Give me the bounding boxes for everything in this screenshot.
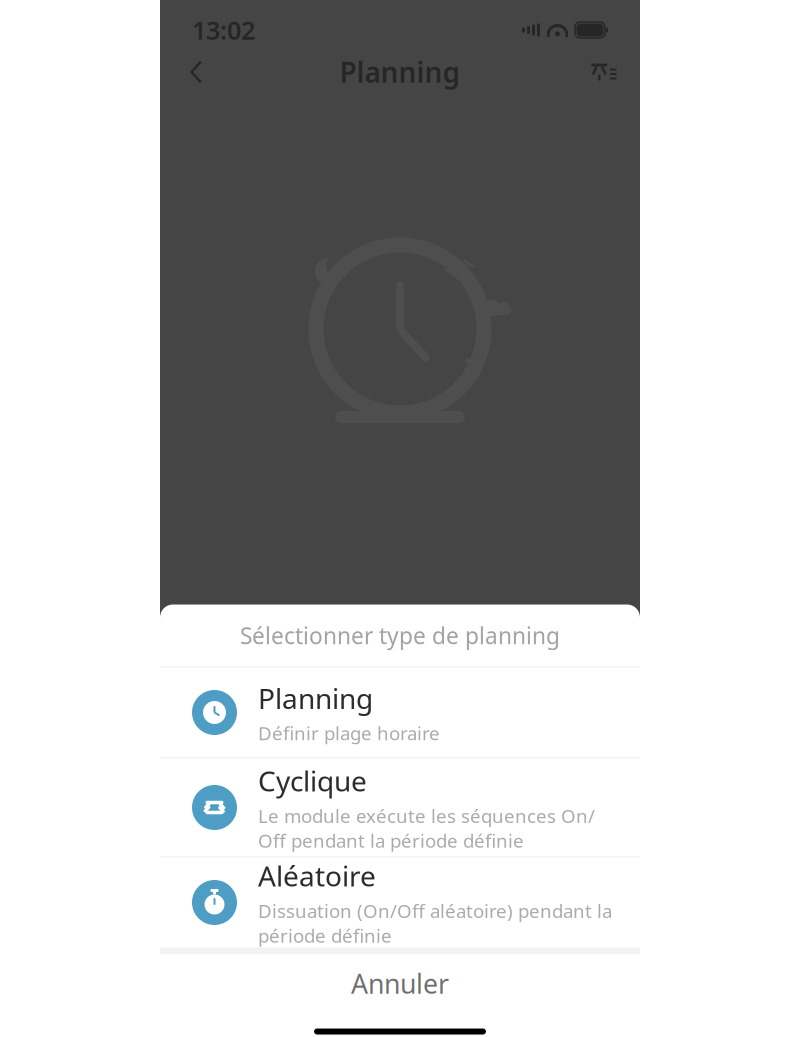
staticText: Planning — [258, 679, 373, 717]
button[interactable]: Aléatoire — [160, 857, 640, 947]
staticText: Aléatoire — [258, 857, 376, 894]
staticText: Annuler — [351, 966, 449, 1001]
staticText: Définir plage horaire — [258, 721, 440, 745]
button[interactable]: Planning — [160, 667, 640, 757]
staticText: Cyclique — [258, 762, 367, 799]
button[interactable]: Annuler — [160, 954, 640, 1012]
staticText: Planning — [339, 53, 460, 91]
button[interactable]: Cyclique — [160, 758, 640, 856]
staticText: 13:02 — [192, 13, 255, 47]
staticText: Sélectionner type de planning — [240, 620, 560, 650]
staticText: Dissuation (On/Off aléatoire) pendant la… — [258, 898, 612, 948]
staticText: Le module exécute les séquences On/Off p… — [258, 803, 595, 853]
button[interactable]: Filter — [582, 50, 626, 94]
button[interactable]: Back — [174, 50, 218, 94]
